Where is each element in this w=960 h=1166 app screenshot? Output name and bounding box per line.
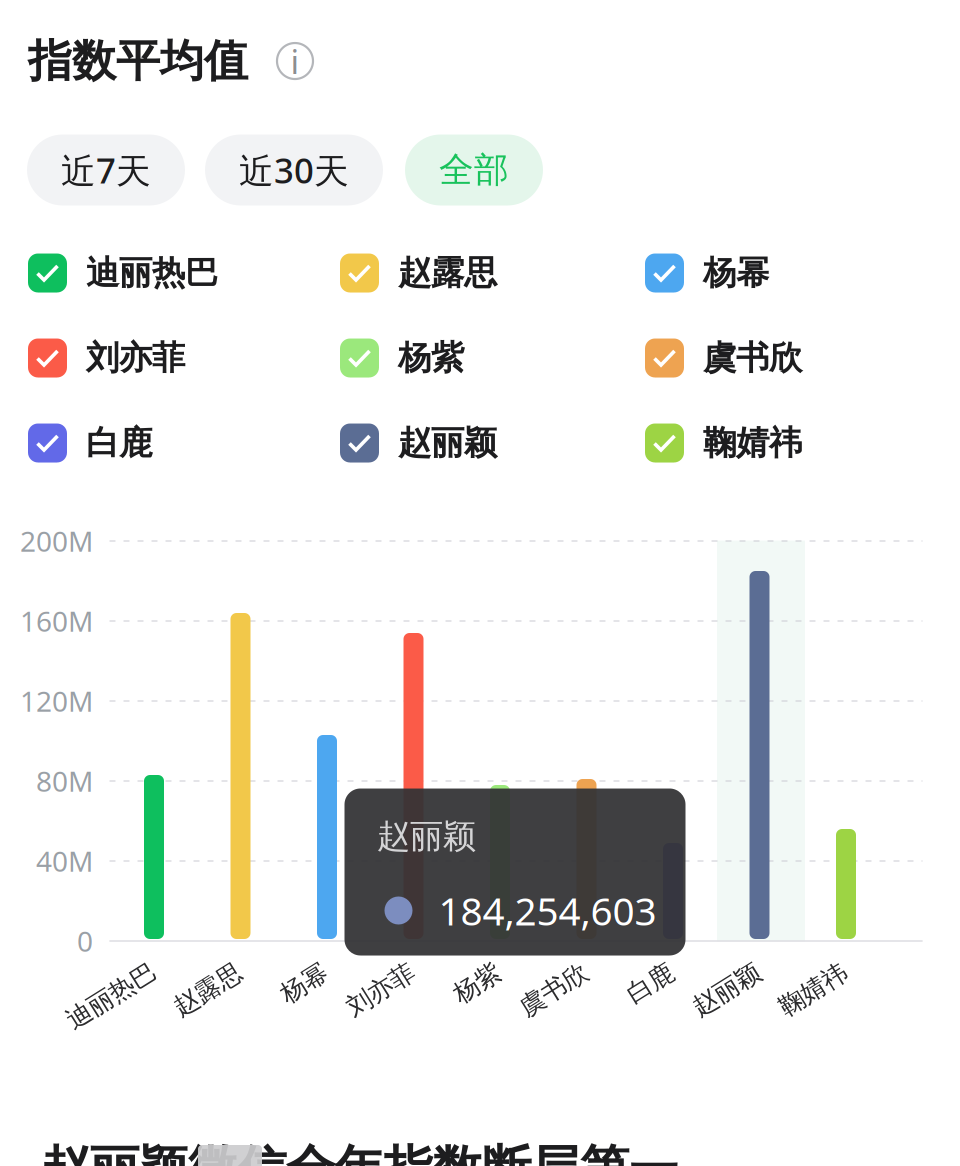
button[interactable]: 赵露思: [340, 247, 620, 299]
button[interactable]: 全部: [405, 134, 543, 205]
button[interactable]: 近7天: [27, 134, 185, 205]
staticText: 184,254,603: [438, 885, 656, 936]
staticText: 鞠婧祎: [703, 422, 802, 463]
staticText: 杨紫: [452, 968, 502, 999]
staticText: 迪丽热巴: [86, 252, 218, 293]
button[interactable]: 杨紫: [340, 332, 620, 384]
staticText: i: [290, 39, 299, 83]
staticText: 杨幂: [703, 252, 769, 293]
staticText: 杨紫: [398, 337, 464, 378]
staticText: 白鹿: [86, 422, 152, 463]
button[interactable]: 迪丽热巴: [28, 247, 308, 299]
staticText: 刘亦菲: [86, 337, 185, 378]
staticText: 近30天: [239, 147, 349, 193]
staticText: 赵丽颖: [689, 974, 764, 1005]
staticText: 赵露思: [398, 252, 497, 293]
button[interactable]: 近30天: [205, 134, 383, 205]
staticText: 杨幂: [279, 968, 329, 999]
staticText: 全部: [439, 149, 509, 191]
staticText: 80M: [36, 762, 93, 800]
button[interactable]: 虞书欣: [645, 332, 925, 384]
staticText: 赵丽颖: [377, 816, 476, 857]
button[interactable]: 赵丽颖: [340, 417, 620, 469]
button[interactable]: 刘亦菲: [28, 332, 308, 384]
staticText: 刘亦菲: [343, 974, 418, 1005]
staticText: 虞书欣: [703, 337, 802, 378]
button[interactable]: 杨幂: [645, 247, 925, 299]
staticText: 鞠婧祎: [776, 974, 851, 1005]
staticText: 120M: [20, 682, 93, 720]
staticText: 160M: [20, 602, 93, 640]
staticText: 虞书欣: [516, 974, 591, 1005]
staticText: 白鹿: [625, 968, 675, 999]
staticText: 指数平均值: [28, 34, 248, 88]
button[interactable]: 白鹿: [28, 417, 308, 469]
staticText: 赵丽颖微信全年指数断层第一: [41, 1139, 678, 1166]
staticText: 赵丽颖: [398, 422, 497, 463]
button[interactable]: 鞠婧祎: [645, 417, 925, 469]
staticText: 40M: [36, 842, 93, 880]
staticText: 迪丽热巴: [61, 980, 161, 1011]
staticText: 赵露思: [170, 974, 245, 1005]
staticText: 近7天: [61, 147, 151, 193]
button[interactable]: 指数说明: [277, 43, 313, 79]
staticText: 0: [77, 922, 93, 960]
staticText: 200M: [20, 522, 93, 560]
